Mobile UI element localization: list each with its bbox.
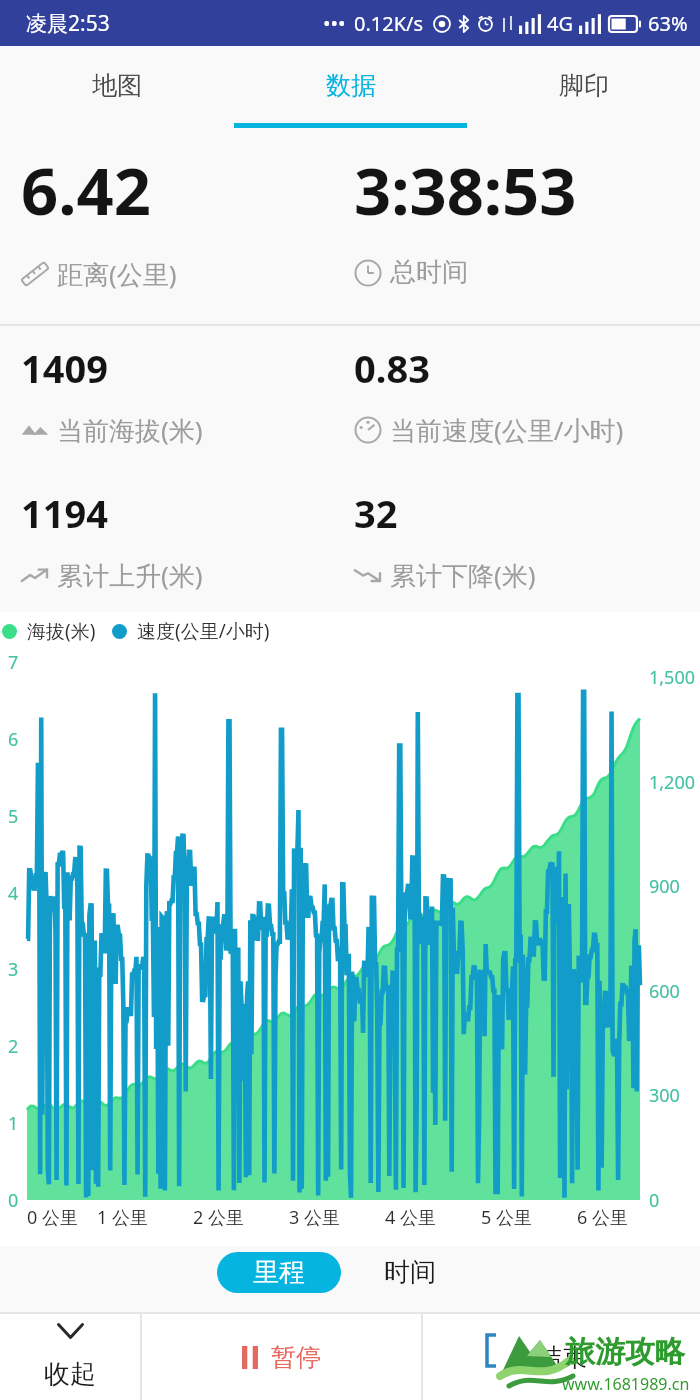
staticText: 300 [649, 1083, 680, 1108]
staticText: www.1681989.cn [562, 1373, 690, 1395]
staticText: 6.42 [21, 146, 151, 235]
staticText: 地图 [92, 70, 142, 101]
staticText: 结束 [537, 1342, 587, 1373]
button[interactable]: 地图 [0, 46, 234, 130]
staticText: 7 [8, 650, 19, 675]
staticText: 当前海拔(米) [57, 412, 203, 448]
staticText: 0 [8, 1188, 19, 1213]
staticText: 0.12K/s [354, 10, 424, 37]
staticText: 0.83 [354, 342, 430, 394]
button[interactable]: 收起 [0, 1314, 140, 1400]
staticText: 32 [354, 487, 398, 539]
staticText: 3 [8, 957, 19, 982]
staticText: 累计下降(米) [390, 557, 536, 593]
staticText: 暂停 [271, 1342, 321, 1373]
staticText: 6 公里 [577, 1205, 628, 1230]
button[interactable]: 时间 [374, 1252, 446, 1293]
staticText: 1,200 [649, 770, 696, 795]
staticText: 海拔(米) [27, 618, 96, 644]
button[interactable]: 里程 [217, 1252, 341, 1293]
staticText: 当前速度(公里/小时) [390, 412, 624, 448]
staticText: 数据 [326, 70, 376, 101]
staticText: 2 [8, 1034, 19, 1059]
staticText: 累计上升(米) [57, 557, 203, 593]
staticText: 旅游攻略 [565, 1333, 685, 1371]
staticText: 1409 [21, 342, 108, 394]
staticText: 1 [8, 1111, 19, 1136]
button[interactable]: 脚印 [467, 46, 700, 130]
staticText: 速度(公里/小时) [137, 618, 270, 644]
staticText: 3:38:53 [354, 146, 577, 235]
staticText: 凌晨2:53 [26, 9, 110, 38]
staticText: ••• [323, 10, 346, 37]
staticText: 脚印 [559, 70, 609, 101]
staticText: 63% [648, 10, 688, 37]
staticText: 5 公里 [481, 1205, 532, 1230]
staticText: 2 公里 [193, 1205, 244, 1230]
staticText: 4 [8, 881, 19, 906]
staticText: 5 [8, 804, 19, 829]
staticText: 4 公里 [385, 1205, 436, 1230]
staticText: 600 [649, 979, 680, 1004]
staticText: 900 [649, 874, 680, 899]
button[interactable]: 数据 [234, 46, 467, 130]
staticText: 1 公里 [97, 1205, 148, 1230]
staticText: 6 [8, 727, 19, 752]
staticText: 0 公里 [27, 1205, 78, 1230]
button[interactable]: 结束 [423, 1314, 700, 1400]
staticText: 总时间 [390, 256, 468, 289]
staticText: 距离(公里) [57, 256, 177, 292]
staticText: 1194 [21, 487, 108, 539]
staticText: 收起 [44, 1358, 96, 1391]
staticText: 4G [547, 10, 573, 37]
staticText: 0 [649, 1188, 660, 1213]
staticText: 里程 [253, 1256, 305, 1289]
staticText: 1,500 [649, 665, 696, 690]
staticText: 时间 [384, 1256, 436, 1289]
button[interactable]: 暂停 [142, 1314, 421, 1400]
staticText: 3 公里 [289, 1205, 340, 1230]
